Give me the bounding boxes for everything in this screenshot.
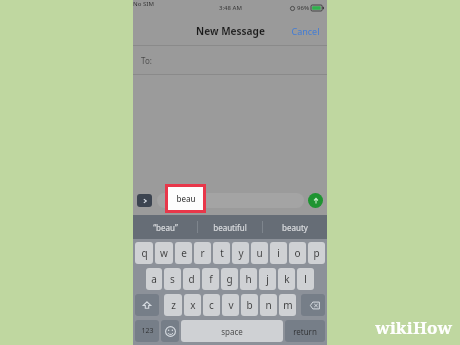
button[interactable]: g — [221, 268, 238, 290]
button[interactable]: b — [241, 294, 258, 316]
staticText: space — [221, 326, 243, 337]
staticText: q — [141, 246, 148, 260]
button[interactable]: Send — [308, 193, 323, 208]
button[interactable]: n — [260, 294, 277, 316]
staticText: beauty — [282, 222, 308, 233]
button[interactable]: “beau” — [133, 215, 197, 239]
button[interactable]: w — [155, 242, 173, 264]
staticText: No SIM — [133, 0, 154, 8]
staticText: i — [277, 246, 280, 260]
button[interactable]: More options — [137, 194, 152, 207]
staticText: How — [413, 316, 452, 339]
staticText: e — [181, 246, 187, 260]
staticText: 123 — [141, 326, 154, 336]
button[interactable]: c — [203, 294, 220, 316]
staticText: b — [246, 298, 253, 312]
button[interactable]: Backspace — [301, 294, 325, 316]
staticText: beau — [176, 193, 196, 204]
staticText: x — [190, 298, 196, 312]
button[interactable]: u — [251, 242, 268, 264]
staticText: wiki — [375, 316, 413, 339]
staticText: return — [293, 326, 317, 337]
button[interactable]: y — [232, 242, 249, 264]
button[interactable]: d — [183, 268, 200, 290]
staticText: z — [171, 298, 176, 312]
button[interactable]: beauty — [263, 215, 327, 239]
button[interactable]: Cancel — [284, 20, 327, 42]
button[interactable]: To: — [133, 46, 327, 74]
staticText: h — [245, 272, 252, 286]
button[interactable]: k — [278, 268, 295, 290]
button[interactable]: l — [297, 268, 314, 290]
staticText: c — [209, 298, 214, 312]
staticText: s — [170, 272, 175, 286]
button[interactable]: t — [213, 242, 230, 264]
button[interactable]: q — [135, 242, 153, 264]
button[interactable]: Shift — [135, 294, 159, 316]
button[interactable]: Emoji — [161, 320, 179, 342]
button[interactable]: 123 — [135, 320, 159, 342]
button[interactable]: p — [308, 242, 325, 264]
staticText: New Message — [196, 24, 265, 38]
staticText: r — [200, 246, 205, 260]
button[interactable]: r — [194, 242, 211, 264]
staticText: n — [265, 298, 272, 312]
staticText: v — [228, 298, 234, 312]
button[interactable] — [157, 193, 304, 208]
button[interactable]: i — [270, 242, 287, 264]
staticText: 96% — [297, 4, 309, 12]
staticText: j — [266, 272, 269, 286]
button[interactable]: a — [146, 268, 162, 290]
staticText: p — [313, 246, 320, 260]
staticText: Cancel — [291, 25, 320, 37]
staticText: f — [209, 272, 213, 286]
staticText: “beau” — [153, 222, 178, 233]
button[interactable]: e — [175, 242, 192, 264]
staticText: l — [304, 272, 307, 286]
button[interactable]: j — [259, 268, 276, 290]
button[interactable]: m — [279, 294, 296, 316]
staticText: To: — [141, 55, 152, 66]
button[interactable]: x — [184, 294, 201, 316]
button[interactable]: space — [181, 320, 283, 342]
button[interactable]: f — [202, 268, 219, 290]
staticText: y — [238, 246, 244, 260]
staticText: t — [220, 246, 224, 260]
staticText: 3:48 AM — [219, 4, 242, 12]
button[interactable]: beautiful — [198, 215, 262, 239]
staticText: g — [226, 272, 233, 286]
button[interactable]: o — [289, 242, 306, 264]
staticText: w — [160, 246, 168, 260]
staticText: a — [151, 272, 157, 286]
staticText: k — [284, 272, 290, 286]
button[interactable]: z — [164, 294, 182, 316]
button[interactable]: h — [240, 268, 257, 290]
staticText: m — [283, 298, 293, 312]
staticText: d — [188, 272, 195, 286]
staticText: beautiful — [213, 222, 247, 233]
button[interactable]: return — [285, 320, 325, 342]
button[interactable]: s — [164, 268, 181, 290]
button[interactable]: v — [222, 294, 239, 316]
staticText: o — [294, 246, 301, 260]
staticText: u — [256, 246, 263, 260]
